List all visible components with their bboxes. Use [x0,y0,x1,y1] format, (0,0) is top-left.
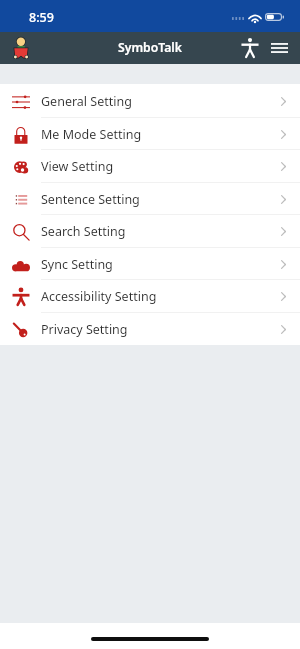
staticText: 8:59 [29,9,54,26]
button[interactable]: Sentence Setting [0,182,300,215]
button[interactable]: General Setting [0,84,300,117]
staticText: SymboTalk [118,39,182,56]
button[interactable]: Accessibility Setting [0,279,300,312]
staticText: General Setting [41,93,132,110]
staticText: Search Setting [41,223,126,240]
staticText: Sync Setting [41,256,113,273]
button[interactable]: Accessibility [238,32,262,64]
button[interactable]: Menu [267,32,292,64]
button[interactable]: Me Mode Setting [0,117,300,150]
staticText: View Setting [41,158,114,175]
staticText: Privacy Setting [41,321,128,338]
button[interactable]: Search Setting [0,214,300,247]
button[interactable]: Privacy Setting [0,312,300,345]
button[interactable]: SymboTalk logo [0,32,41,64]
staticText: Accessibility Setting [41,288,157,305]
button[interactable]: Sync Setting [0,247,300,280]
staticText: Me Mode Setting [41,126,142,143]
button[interactable]: View Setting [0,149,300,182]
staticText: Sentence Setting [41,191,140,208]
